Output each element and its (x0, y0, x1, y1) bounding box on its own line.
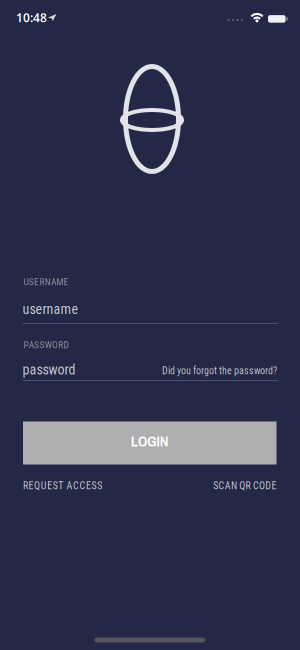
staticText: 10:48 (16, 10, 47, 25)
staticText: USERNAME (23, 276, 69, 288)
staticText: PASSWORD (23, 339, 69, 351)
staticText: SCAN QR CODE (213, 480, 276, 492)
staticText: username (22, 301, 78, 317)
button[interactable]: LOGIN (23, 421, 276, 464)
staticText: password (22, 361, 75, 378)
button[interactable]: username (22, 304, 277, 324)
staticText: LOGIN (131, 431, 169, 451)
staticText: Did you forgot the password? (162, 365, 277, 377)
staticText: REQUEST ACCESS (23, 480, 102, 492)
button[interactable]: SCAN QR CODE (213, 480, 276, 492)
button[interactable]: password (22, 362, 277, 381)
button[interactable]: REQUEST ACCESS (23, 480, 102, 492)
button[interactable]: Did you forgot the password? (162, 365, 277, 377)
